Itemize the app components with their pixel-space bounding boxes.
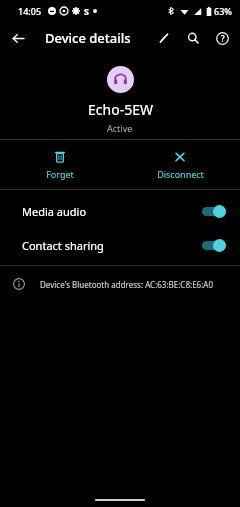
button[interactable]: Rename [152,26,176,50]
button[interactable]: Back [7,27,29,49]
staticText: Device details [45,29,131,47]
button[interactable]: Disconnect [120,140,240,189]
staticText: Disconnect [157,168,204,180]
staticText: Echo-5EW [88,100,153,119]
staticText: Device's Bluetooth address: AC:63:BE:C8:… [40,279,214,290]
button[interactable]: Contact sharing [0,228,240,262]
staticText: 14:05 [18,5,42,17]
staticText: Forget [46,168,74,180]
button[interactable]: Media audio [0,194,240,228]
button[interactable]: Help [210,26,234,50]
staticText: 63% [214,5,232,17]
staticText: Active [107,122,133,134]
staticText: Contact sharing [22,238,202,253]
button[interactable]: Forget [0,140,120,189]
button[interactable]: Search [181,26,205,50]
staticText: Media audio [22,204,202,219]
staticText: ? [221,33,225,44]
staticText: S [84,5,89,17]
